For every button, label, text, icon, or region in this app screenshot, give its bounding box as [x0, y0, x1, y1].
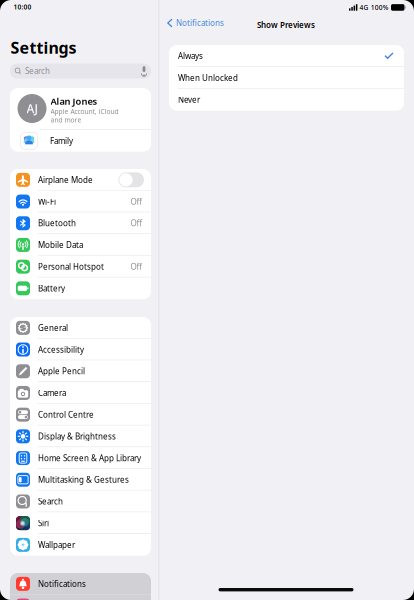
button[interactable]: When Unlocked	[169, 67, 404, 89]
button[interactable]: Airplane Mode	[10, 169, 151, 191]
staticText: Siri	[38, 518, 49, 528]
staticText: Mobile Data	[38, 240, 83, 250]
staticText: Home Screen & App Library	[38, 453, 141, 463]
staticText: Airplane Mode	[38, 174, 93, 185]
staticText: Display & Brightness	[38, 431, 116, 442]
staticText: Off	[130, 196, 142, 207]
button[interactable]: General	[10, 317, 151, 339]
staticText: Wallpaper	[38, 539, 75, 550]
staticText: Family	[50, 135, 73, 146]
staticText: Multitasking & Gestures	[38, 474, 129, 485]
staticText: Never	[178, 94, 200, 105]
button[interactable]: Multitasking & Gestures	[10, 469, 151, 491]
button[interactable]: Wallpaper	[10, 534, 151, 556]
staticText: Personal Hotspot	[38, 261, 104, 272]
button[interactable]: Siri	[10, 512, 151, 534]
button[interactable]: Camera	[10, 382, 151, 404]
staticText: Search	[38, 496, 63, 507]
staticText: Settings	[10, 37, 76, 58]
staticText: Notifications	[176, 18, 224, 28]
staticText: Alan Jones	[50, 95, 97, 107]
button[interactable]: Mobile Data	[10, 234, 151, 256]
button[interactable]: Personal Hotspot	[10, 256, 151, 277]
button[interactable]: Accessibility	[10, 339, 151, 360]
button[interactable]: Always	[169, 45, 404, 67]
staticText: Off	[130, 218, 142, 228]
staticText: Search	[25, 66, 50, 76]
staticText: 100%	[371, 3, 389, 12]
button[interactable]: Sounds	[10, 595, 151, 600]
staticText: Accessibility	[38, 344, 84, 355]
staticText: 4G	[360, 3, 369, 12]
button[interactable]: AJ	[10, 88, 151, 130]
button[interactable]: Control Centre	[10, 404, 151, 425]
button[interactable]: Home Screen & App Library	[10, 447, 151, 469]
staticText: Apple Pencil	[38, 366, 85, 376]
button[interactable]: Display & Brightness	[10, 425, 151, 447]
button[interactable]: Notifications	[10, 573, 151, 595]
button[interactable]: Bluetooth	[10, 212, 151, 234]
staticText: General	[38, 322, 68, 333]
button[interactable]: Apple Pencil	[10, 360, 151, 382]
button[interactable]: Notifications	[164, 15, 226, 31]
staticText: and more	[50, 115, 81, 124]
staticText: Bluetooth	[38, 218, 76, 228]
button[interactable]: Wi-Fi	[10, 191, 151, 212]
staticText: 10:00	[13, 2, 31, 11]
staticText: Wi-Fi	[38, 196, 56, 207]
staticText: When Unlocked	[178, 72, 238, 83]
staticText: Always	[178, 51, 203, 61]
staticText: Battery	[38, 283, 65, 294]
button[interactable]: Family	[10, 130, 151, 152]
staticText: Off	[130, 261, 142, 272]
staticText: Show Previews	[257, 19, 315, 30]
staticText: AJ	[26, 100, 37, 116]
button[interactable]: Search	[10, 491, 151, 512]
staticText: Apple Account, iCloud	[50, 107, 118, 116]
button[interactable]: Never	[169, 89, 404, 111]
staticText: Notifications	[38, 578, 86, 589]
staticText: Control Centre	[38, 409, 94, 420]
staticText: Camera	[38, 388, 66, 398]
button[interactable]: Battery	[10, 277, 151, 299]
